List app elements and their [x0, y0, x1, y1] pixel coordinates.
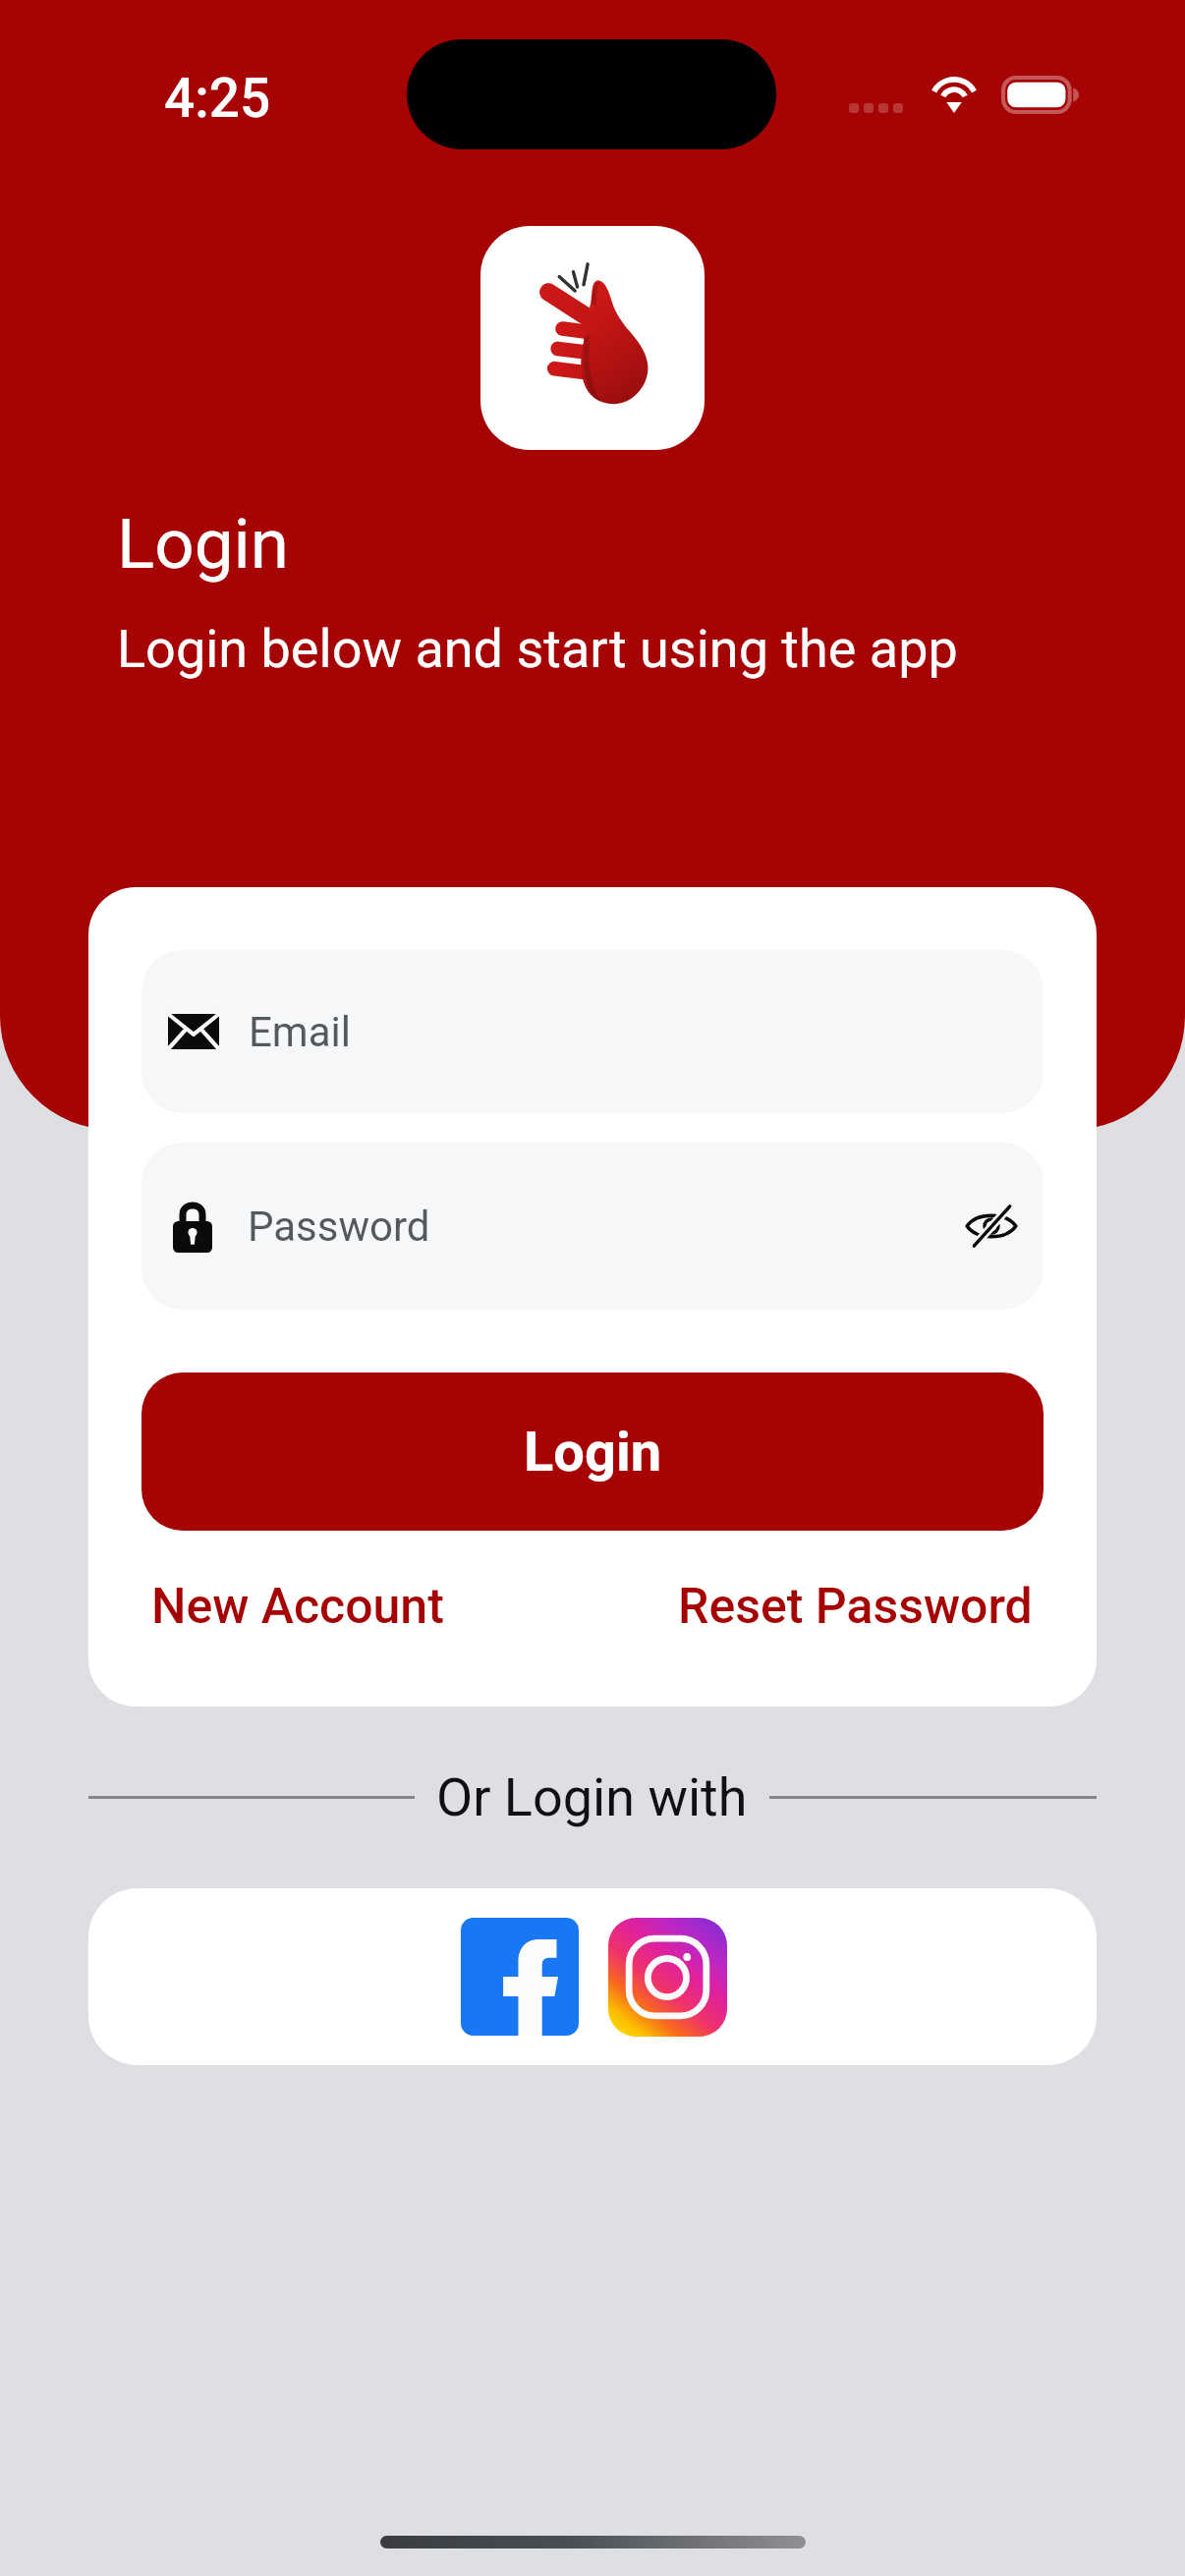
staticText: Email	[249, 1008, 351, 1056]
staticText: 4:25	[164, 67, 271, 130]
staticText: Or Login with	[436, 1766, 748, 1828]
staticText: Login below and start using the app	[117, 618, 958, 680]
button[interactable]: Login	[141, 1372, 1044, 1531]
button[interactable]: Show password	[953, 1188, 1030, 1264]
button[interactable]: New Account	[151, 1578, 444, 1636]
staticText: Login	[117, 503, 290, 585]
button[interactable]: Reset Password	[678, 1578, 1033, 1636]
staticText: Reset Password	[678, 1578, 1033, 1636]
staticText: New Account	[151, 1578, 444, 1636]
button[interactable]: Login with Facebook	[461, 1918, 579, 2036]
button[interactable]: Password	[141, 1143, 1044, 1310]
button[interactable]: Email	[141, 950, 1044, 1113]
staticText: Password	[248, 1203, 430, 1251]
button[interactable]: Login with Instagram	[608, 1918, 727, 2037]
staticText: Login	[524, 1420, 662, 1484]
